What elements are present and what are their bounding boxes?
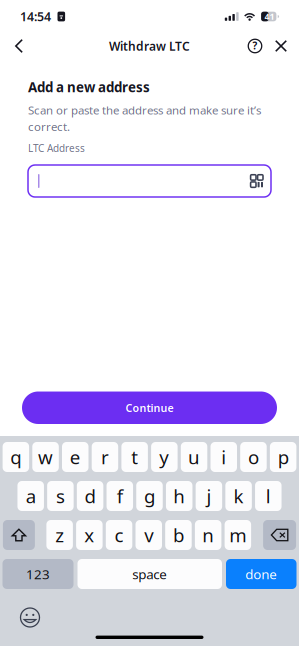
button[interactable]: z [46, 520, 73, 550]
button[interactable]: k [225, 481, 252, 511]
staticText: j [206, 483, 211, 509]
button[interactable]: c [106, 520, 132, 550]
button[interactable]: i [210, 442, 237, 472]
staticText: d [85, 483, 96, 509]
staticText: correct. [28, 119, 70, 134]
button[interactable]: e [62, 442, 88, 472]
staticText: Continue [125, 400, 173, 415]
staticText: o [248, 444, 259, 470]
staticText: x [84, 522, 94, 548]
staticText: u [188, 444, 200, 470]
staticText: l [266, 483, 271, 509]
button[interactable]: u [181, 442, 207, 472]
button[interactable]: Close [272, 33, 290, 59]
staticText: v [144, 522, 153, 548]
staticText: t [131, 444, 138, 470]
staticText: n [202, 522, 214, 548]
button[interactable]: 123 [2, 559, 73, 589]
staticText: 14:54 [20, 8, 51, 25]
button[interactable]: j [196, 481, 222, 511]
button[interactable]: x [76, 520, 103, 550]
staticText: Add a new address [28, 78, 150, 96]
button[interactable]: Help [245, 33, 265, 59]
button[interactable]: m [225, 520, 251, 550]
button[interactable]: q [3, 442, 29, 472]
staticText: 123 [26, 565, 50, 583]
button[interactable]: h [166, 481, 192, 511]
button[interactable]: f [106, 481, 133, 511]
staticText: k [234, 483, 244, 509]
staticText: 41 [264, 10, 274, 22]
staticText: y [159, 444, 169, 470]
button[interactable]: Shift [3, 520, 35, 550]
staticText: a [26, 483, 36, 509]
button[interactable]: Emoji [20, 608, 40, 627]
staticText: f [117, 483, 123, 509]
button[interactable]: b [165, 520, 192, 550]
staticText: i [221, 444, 226, 470]
button[interactable]: r [92, 442, 118, 472]
staticText: z [55, 522, 64, 548]
staticText: space [132, 565, 167, 583]
button[interactable]: Delete [263, 520, 296, 550]
staticText: g [144, 483, 155, 509]
button[interactable]: s [47, 481, 74, 511]
button[interactable]: Back [6, 33, 32, 59]
button[interactable]: Continue [22, 391, 277, 424]
button[interactable]: done [226, 559, 296, 589]
staticText: p [278, 444, 289, 470]
staticText: c [115, 522, 124, 548]
staticText: Scan or paste the address and make sure … [28, 102, 261, 118]
button[interactable]: t [121, 442, 148, 472]
staticText: e [70, 444, 81, 470]
button[interactable]: y [151, 442, 178, 472]
staticText: ? [252, 39, 257, 52]
staticText: q [10, 444, 21, 470]
button[interactable]: space [77, 559, 222, 589]
button[interactable]: n [195, 520, 221, 550]
staticText: done [245, 565, 277, 583]
staticText: h [173, 483, 185, 509]
staticText: Withdraw LTC [109, 38, 190, 54]
button[interactable]: p [270, 442, 296, 472]
button[interactable]: o [240, 442, 267, 472]
button[interactable]: a [17, 481, 44, 511]
staticText: s [56, 483, 65, 509]
button[interactable]: l [255, 481, 281, 511]
button[interactable]: g [136, 481, 163, 511]
button[interactable]: w [32, 442, 59, 472]
button[interactable]: v [135, 520, 162, 550]
staticText: m [229, 522, 246, 548]
staticText: w [38, 444, 53, 470]
staticText: r [101, 444, 109, 470]
staticText: b [173, 522, 184, 548]
staticText: LTC Address [28, 141, 85, 155]
button[interactable]: d [77, 481, 103, 511]
